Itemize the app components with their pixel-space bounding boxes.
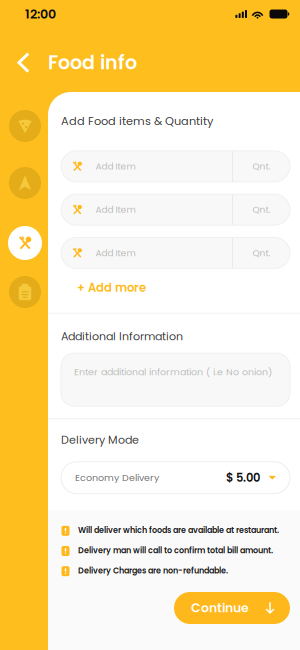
- button[interactable]: Enter additional information ( i.e No on…: [61, 353, 290, 406]
- staticText: Add Item: [95, 203, 135, 216]
- staticText: Will deliver which foods are available a…: [78, 525, 279, 536]
- button[interactable]: Continue: [174, 592, 290, 624]
- button[interactable]: Orders: [5, 270, 45, 314]
- staticText: Enter additional information ( i.e No on…: [74, 365, 272, 378]
- staticText: + Add more: [77, 279, 146, 296]
- staticText: Delivery Charges are non-refundable.: [78, 565, 228, 576]
- staticText: Add Item: [95, 160, 135, 173]
- staticText: Qnt.: [252, 247, 270, 259]
- staticText: Qnt.: [252, 160, 270, 173]
- staticText: Food info: [48, 49, 137, 76]
- button[interactable]: Menu: [5, 104, 45, 148]
- button[interactable]: Add Item: [61, 151, 290, 182]
- button[interactable]: Back: [11, 46, 36, 79]
- staticText: Additional Information: [61, 329, 183, 344]
- staticText: 12:00: [25, 5, 56, 23]
- staticText: Add Food items & Quantity: [61, 113, 213, 129]
- staticText: Add Item: [95, 247, 135, 259]
- button[interactable]: Add Item: [61, 194, 290, 225]
- button[interactable]: Delivery location: [5, 161, 45, 205]
- staticText: Qnt.: [252, 203, 270, 216]
- staticText: Economy Delivery: [75, 471, 159, 484]
- button[interactable]: Add Item: [61, 237, 290, 268]
- button[interactable]: + Add more: [61, 274, 162, 301]
- staticText: Delivery Mode: [61, 432, 139, 448]
- staticText: Continue: [191, 599, 249, 617]
- staticText: Delivery man will call to confirm total …: [78, 545, 273, 556]
- button[interactable]: Economy Delivery: [61, 462, 290, 494]
- staticText: $ 5.00: [226, 470, 260, 486]
- button[interactable]: Food items: [5, 221, 45, 265]
